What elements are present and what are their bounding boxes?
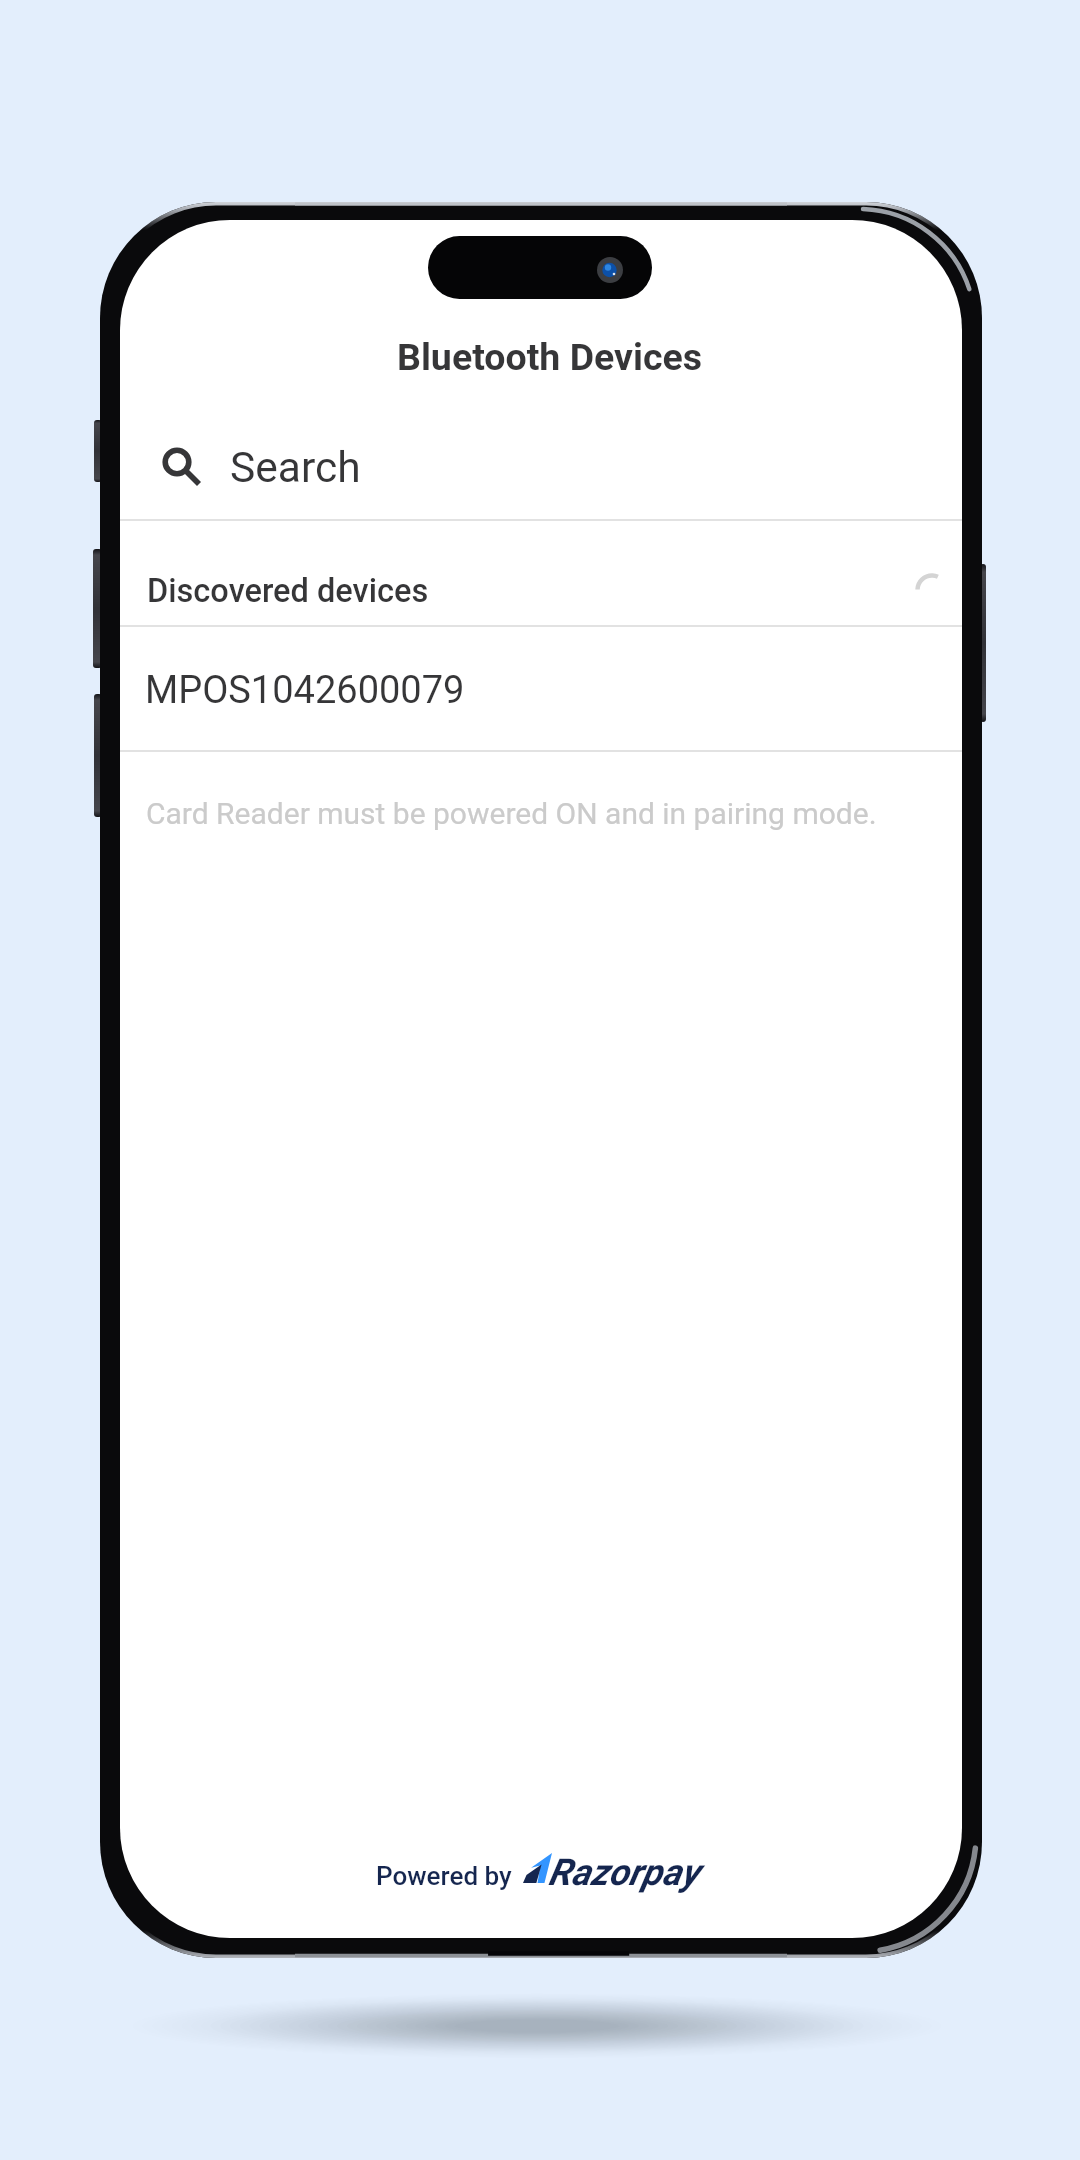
other: Front camera	[592, 252, 628, 288]
button[interactable]: Search	[120, 415, 962, 519]
staticText: Powered by	[376, 1861, 512, 1891]
other: Search	[152, 437, 202, 487]
staticText: Bluetooth Devices	[397, 335, 703, 379]
staticText: Razorpay	[548, 1851, 699, 1894]
staticText: MPOS1042600079	[145, 668, 465, 713]
staticText: Card Reader must be powered ON and in pa…	[146, 796, 877, 831]
staticText: Discovered devices	[147, 572, 429, 610]
staticText: Search	[230, 443, 361, 493]
button[interactable]: Discovered devices	[120, 521, 962, 625]
button[interactable]: Powered by	[376, 1851, 703, 1894]
button[interactable]: MPOS1042600079	[120, 627, 962, 750]
